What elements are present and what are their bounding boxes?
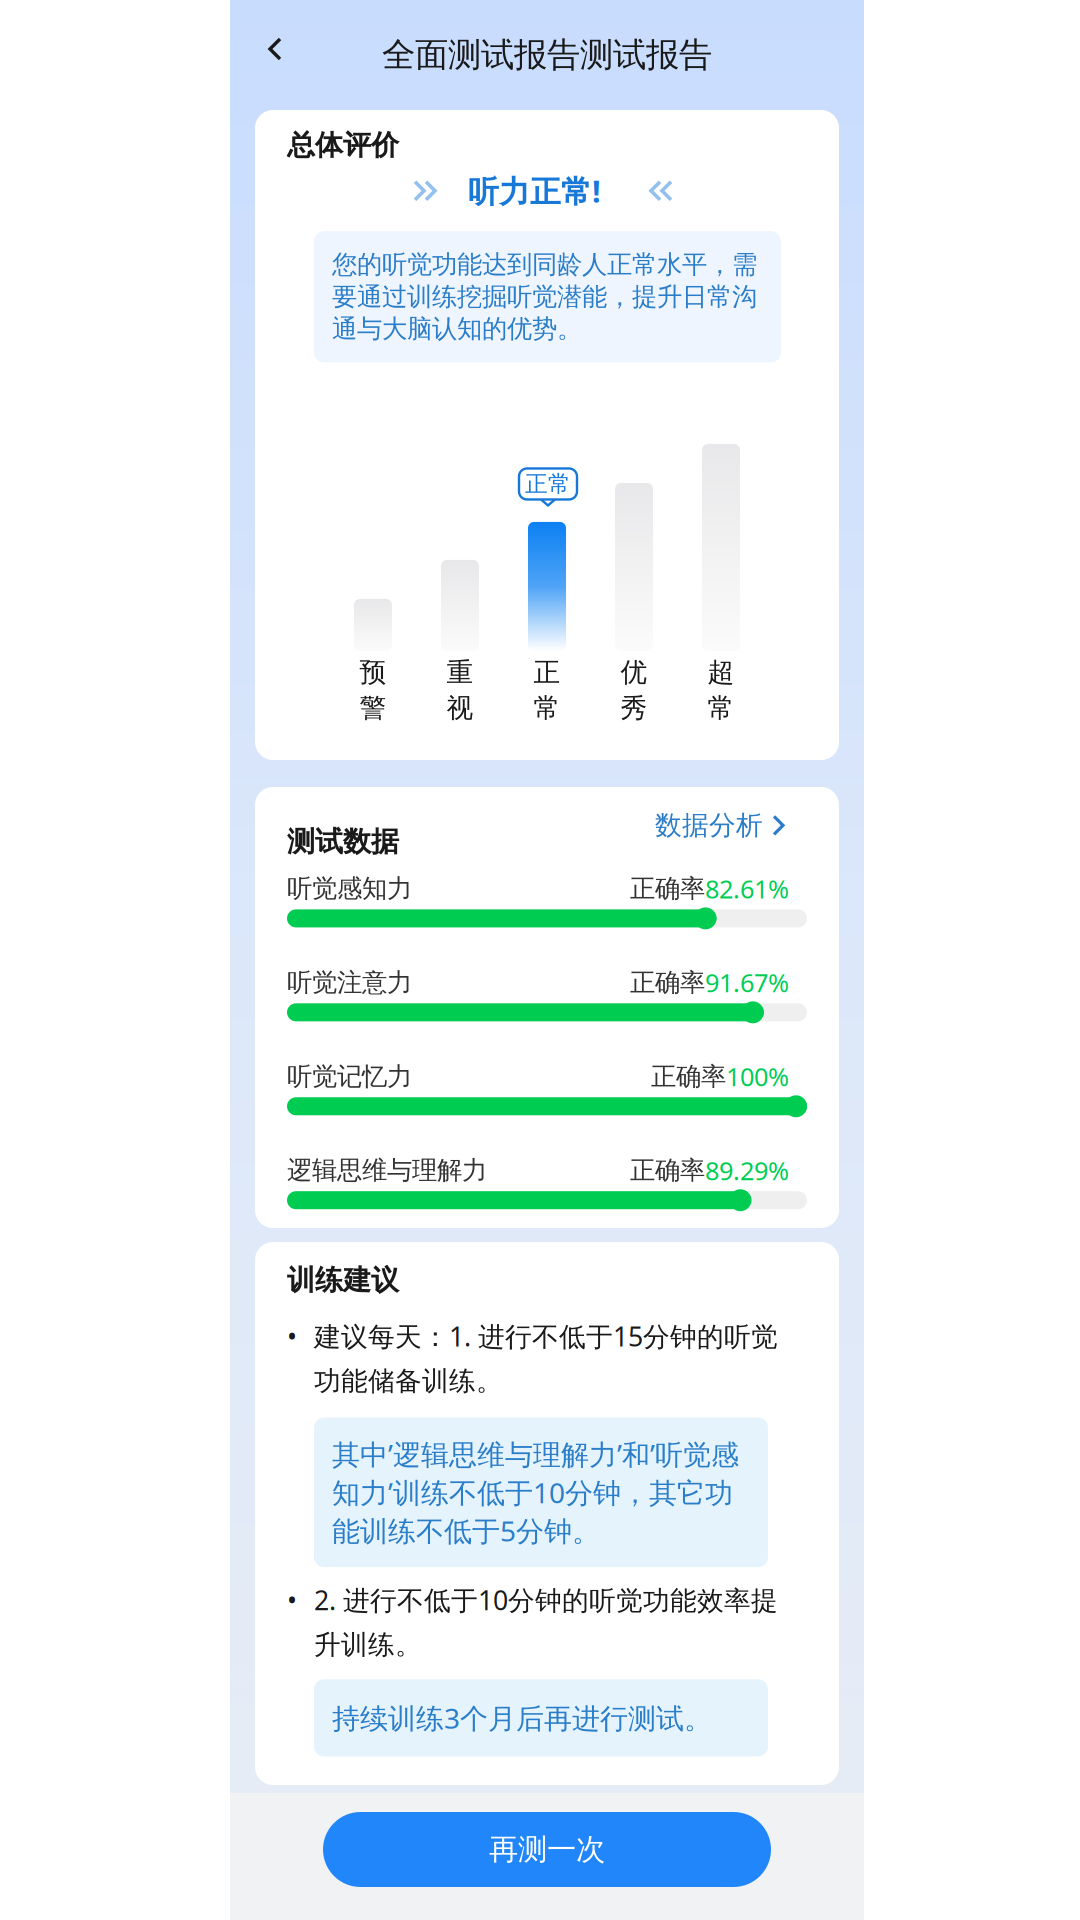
- button[interactable]: 返回: [252, 26, 298, 72]
- staticText: 全面测试报告测试报告: [382, 34, 712, 75]
- staticText: 82.61%: [705, 872, 789, 905]
- staticText: 听觉注意力: [287, 967, 412, 998]
- staticText: 91.67%: [705, 966, 789, 999]
- staticText: 正确率: [630, 1155, 705, 1186]
- staticText: 再测一次: [489, 1831, 605, 1867]
- staticText: 持续训练3个月后再进行测试。: [332, 1699, 712, 1736]
- staticText: 视: [446, 692, 473, 724]
- staticText: 正确率: [630, 873, 705, 904]
- staticText: 正常: [525, 470, 571, 498]
- staticText: 常: [707, 692, 734, 724]
- button[interactable]: 再测一次: [323, 1812, 771, 1887]
- staticText: 正确率: [651, 1061, 726, 1092]
- button[interactable]: 数据分析: [655, 809, 786, 842]
- staticText: 逻辑思维与理解力: [287, 1155, 487, 1186]
- staticText: 听力正常!: [468, 170, 601, 211]
- staticText: 优: [620, 656, 647, 689]
- staticText: •: [287, 1582, 297, 1617]
- staticText: 2. 进行不低于10分钟的听觉功能效率提升训练。: [314, 1582, 778, 1661]
- staticText: 100%: [726, 1060, 789, 1093]
- staticText: 建议每天：1. 进行不低于15分钟的听觉功能储备训练。: [314, 1318, 778, 1398]
- staticText: •: [287, 1318, 297, 1354]
- staticText: 其中’逻辑思维与理解力’和’听觉感知力’训练不低于10分钟，其它功能训练不低于5…: [332, 1436, 739, 1549]
- staticText: 数据分析: [655, 809, 763, 842]
- staticText: 训练建议: [287, 1263, 399, 1297]
- staticText: 正: [533, 656, 560, 689]
- staticText: 总体评价: [287, 128, 399, 162]
- staticText: 警: [359, 692, 386, 724]
- staticText: 常: [533, 692, 560, 724]
- staticText: 正确率: [630, 967, 705, 998]
- staticText: 预: [359, 656, 386, 689]
- staticText: 测试数据: [287, 824, 399, 859]
- staticText: 重: [446, 656, 473, 689]
- staticText: 您的听觉功能达到同龄人正常水平，需要通过训练挖掘听觉潜能，提升日常沟通与大脑认知…: [332, 249, 757, 344]
- staticText: 秀: [620, 692, 647, 724]
- staticText: 听觉感知力: [287, 873, 412, 904]
- staticText: 超: [707, 656, 734, 689]
- staticText: 89.29%: [705, 1154, 789, 1187]
- staticText: 听觉记忆力: [287, 1061, 412, 1092]
